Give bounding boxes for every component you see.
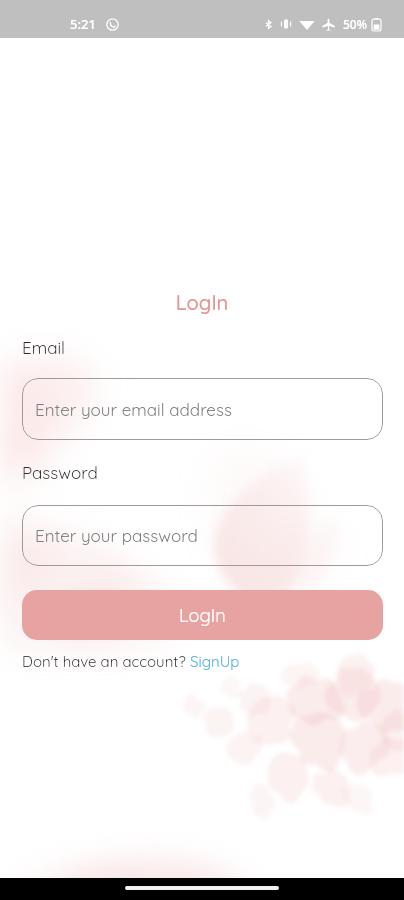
button[interactable]: Enter your password <box>22 505 383 566</box>
staticText: Password <box>22 462 98 483</box>
staticText: Email <box>22 337 66 358</box>
button[interactable]: Enter your email address <box>22 378 383 440</box>
button[interactable]: SignUp <box>190 652 240 671</box>
staticText: Enter your email address <box>35 399 232 420</box>
button[interactable]: LogIn <box>22 590 383 640</box>
staticText: LogIn <box>0 290 404 315</box>
staticText: 5:21 <box>70 15 96 33</box>
staticText: Enter your password <box>35 525 198 546</box>
staticText: 50% <box>343 16 367 32</box>
staticText: Don't have an account? <box>22 652 190 671</box>
staticText: LogIn <box>179 604 226 627</box>
